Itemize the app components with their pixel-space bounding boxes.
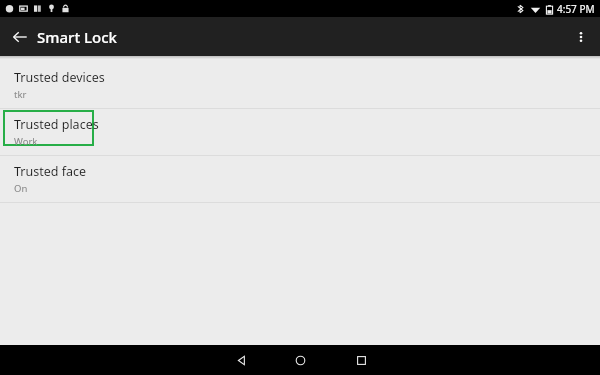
staticText: Smart Lock (37, 27, 117, 47)
staticText: Trusted face (14, 163, 87, 180)
staticText: Trusted places (14, 116, 99, 133)
button[interactable]: Back (7, 24, 33, 50)
button[interactable]: Recent apps (349, 348, 373, 372)
button[interactable]: Home (288, 348, 312, 372)
staticText: On (14, 182, 28, 195)
staticText: Work (14, 135, 38, 148)
button[interactable]: More options (566, 22, 596, 52)
staticText: Trusted devices (14, 69, 105, 86)
button[interactable]: Trusted places (0, 109, 600, 155)
staticText: tkr (14, 88, 27, 101)
button[interactable]: Back (229, 348, 253, 372)
button[interactable]: Trusted devices (0, 62, 600, 108)
button[interactable]: Trusted face (0, 156, 600, 202)
staticText: 4:57 PM (557, 2, 595, 16)
